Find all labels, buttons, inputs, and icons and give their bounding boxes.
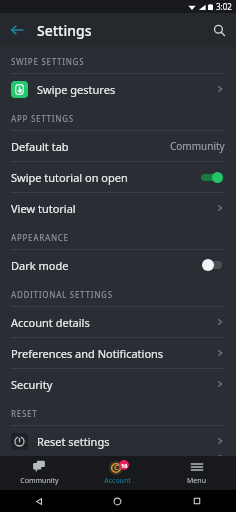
button[interactable]: Swipe tutorial on open: [0, 162, 236, 192]
staticText: Default tab: [11, 139, 69, 154]
button[interactable]: Home: [78, 490, 157, 512]
staticText: ADDITIONAL SETTINGS: [11, 289, 113, 300]
button[interactable]: View tutorial: [0, 193, 236, 223]
staticText: Swipe gestures: [37, 82, 116, 97]
staticText: C: [114, 463, 119, 473]
staticText: Dark mode: [11, 258, 69, 273]
button[interactable]: Preferences and Notifications: [0, 338, 236, 368]
staticText: Swipe tutorial on open: [11, 170, 128, 185]
button[interactable]: Back: [0, 13, 34, 47]
staticText: Reset settings: [37, 434, 110, 449]
staticText: View tutorial: [11, 201, 76, 216]
button[interactable]: Menu: [157, 456, 236, 490]
button[interactable]: Back: [0, 490, 78, 512]
staticText: Security: [11, 377, 53, 392]
button[interactable]: Account details: [0, 307, 236, 337]
button[interactable]: Recents: [157, 490, 236, 512]
staticText: Community: [170, 139, 225, 153]
button[interactable]: Security: [0, 369, 236, 399]
staticText: RESET: [11, 408, 38, 419]
staticText: Menu: [187, 476, 206, 486]
staticText: Account: [104, 476, 131, 486]
button[interactable]: Default tab: [0, 131, 236, 161]
staticText: Account details: [11, 315, 90, 330]
staticText: APPEARANCE: [11, 232, 69, 243]
button[interactable]: Dark mode: [0, 250, 236, 280]
button[interactable]: Community: [0, 456, 78, 490]
staticText: SWIPE SETTINGS: [11, 56, 85, 67]
staticText: APP SETTINGS: [11, 113, 74, 124]
staticText: Settings: [37, 21, 92, 40]
staticText: 3:02: [216, 1, 232, 12]
staticText: Preferences and Notifications: [11, 346, 164, 361]
button[interactable]: Search: [202, 13, 236, 47]
button[interactable]: C: [78, 456, 157, 490]
staticText: Community: [20, 476, 59, 486]
button[interactable]: Swipe gestures: [0, 74, 236, 104]
button[interactable]: Reset settings: [0, 426, 236, 456]
staticText: 16: [121, 462, 128, 469]
